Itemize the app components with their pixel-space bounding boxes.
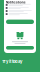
staticText: Try it today: [2, 59, 22, 64]
button[interactable]: [4, 6, 36, 9]
button[interactable]: [4, 9, 36, 12]
button[interactable]: [4, 12, 36, 15]
button[interactable]: Try it today: [2, 59, 22, 64]
staticText: Notifications: [6, 0, 26, 4]
button[interactable]: [4, 3, 36, 6]
button[interactable]: [6, 46, 34, 50]
button[interactable]: [6, 20, 34, 24]
